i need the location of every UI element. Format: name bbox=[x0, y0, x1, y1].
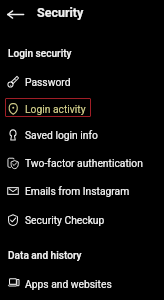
button[interactable]: Emails from Instagram bbox=[0, 177, 164, 205]
button[interactable]: Back bbox=[3, 2, 28, 27]
staticText: Apps and websites bbox=[25, 278, 112, 290]
button[interactable]: Security Checkup bbox=[0, 206, 164, 234]
staticText: Saved login info bbox=[25, 129, 98, 141]
staticText: Security bbox=[37, 5, 84, 20]
staticText: Data and history bbox=[8, 250, 82, 262]
button[interactable]: Saved login info bbox=[0, 121, 164, 149]
staticText: Login activity bbox=[25, 103, 86, 115]
button[interactable]: Apps and websites bbox=[0, 270, 164, 298]
staticText: Two-factor authentication bbox=[25, 157, 143, 169]
staticText: Emails from Instagram bbox=[25, 185, 130, 197]
staticText: Security Checkup bbox=[25, 214, 105, 226]
button[interactable]: Login activity bbox=[0, 95, 164, 123]
staticText: Login security bbox=[8, 48, 72, 60]
button[interactable]: Two-factor authentication bbox=[0, 149, 164, 177]
staticText: Password bbox=[25, 76, 71, 88]
button[interactable]: Password bbox=[0, 68, 164, 96]
